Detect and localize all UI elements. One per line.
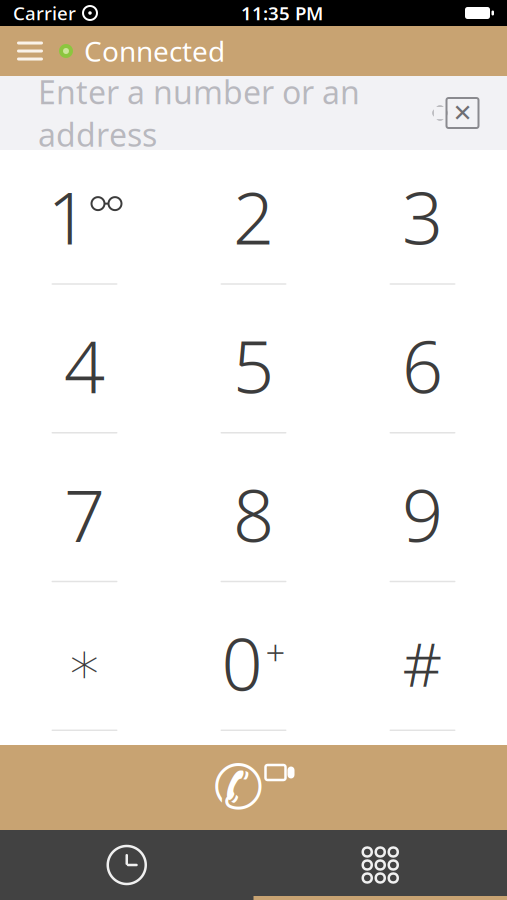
staticText: Enter a number or an address (38, 70, 360, 155)
button[interactable]: Connected (54, 26, 230, 76)
button[interactable]: Recents (0, 830, 253, 900)
button[interactable]: 0 (169, 596, 338, 745)
staticText: 1 (47, 169, 88, 264)
staticText: 6 (402, 318, 443, 413)
button[interactable]: 9 (338, 447, 507, 596)
staticText: 4 (64, 318, 105, 413)
staticText: + (265, 629, 285, 675)
button[interactable]: ∗ (0, 596, 169, 745)
button[interactable]: 5 (169, 299, 338, 448)
staticText: ∗ (66, 630, 103, 696)
staticText: 8 (233, 466, 274, 562)
button[interactable]: Menu (6, 26, 54, 76)
staticText: 2 (233, 169, 274, 264)
button[interactable]: 6 (338, 299, 507, 448)
staticText: 0 (221, 615, 262, 711)
staticText: ✆ (212, 753, 263, 822)
button[interactable]: 1 (0, 150, 169, 299)
staticText: Carrier (13, 1, 76, 25)
button[interactable]: 7 (0, 447, 169, 596)
staticText: 5 (233, 318, 274, 413)
button[interactable]: 2 (169, 150, 338, 299)
staticText: ✕ (452, 99, 472, 127)
button[interactable]: Delete (427, 76, 485, 150)
staticText: # (402, 622, 442, 704)
staticText: 9 (402, 466, 443, 562)
staticText: 3 (402, 169, 443, 264)
button[interactable]: Call (0, 745, 507, 830)
staticText: Connected (84, 32, 225, 70)
button[interactable]: 4 (0, 299, 169, 448)
button[interactable]: 8 (169, 447, 338, 596)
button[interactable]: Keypad (253, 830, 507, 900)
button[interactable]: # (338, 596, 507, 745)
staticText: 7 (64, 466, 105, 562)
staticText: 11:35 PM (241, 1, 323, 25)
button[interactable]: 3 (338, 150, 507, 299)
